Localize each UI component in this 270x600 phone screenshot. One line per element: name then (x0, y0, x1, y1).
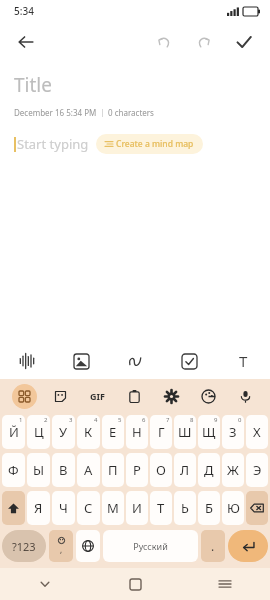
button[interactable]: Л (174, 453, 196, 487)
staticText: 0 characters (108, 107, 154, 118)
button[interactable]: . (201, 530, 225, 562)
staticText: Б (205, 499, 213, 517)
staticText: Э (253, 461, 262, 479)
button[interactable]: Г (150, 415, 172, 449)
staticText: 0 (238, 416, 242, 424)
button[interactable]: Shift (2, 491, 25, 525)
staticText: Ш (178, 423, 192, 441)
button[interactable]: Back (0, 568, 90, 600)
button[interactable]: Change language (76, 530, 100, 562)
staticText: Н (132, 423, 142, 441)
staticText: Я (34, 499, 43, 517)
button[interactable]: Русский (103, 530, 198, 562)
button[interactable]: Settings (153, 379, 190, 413)
staticText: Ы (33, 461, 45, 479)
staticText: О (156, 461, 166, 479)
button[interactable]: З (222, 415, 244, 449)
button[interactable]: Back (8, 24, 44, 60)
button[interactable]: Checklist (162, 343, 216, 379)
button[interactable]: Themes (190, 379, 227, 413)
button[interactable]: Ч (52, 491, 75, 525)
staticText: Д (204, 461, 214, 479)
staticText: 3 (69, 416, 73, 424)
button[interactable]: Щ (198, 415, 220, 449)
staticText: Start typing (17, 135, 89, 153)
button[interactable]: Stickers (42, 379, 79, 413)
button[interactable]: Draw (108, 343, 162, 379)
staticText: С (84, 499, 93, 517)
button[interactable]: Ы (27, 453, 50, 487)
button[interactable]: В (52, 453, 75, 487)
staticText: , (60, 544, 63, 555)
staticText: Ф (8, 461, 19, 479)
staticText: 2 (44, 416, 48, 424)
button[interactable]: Clipboard (116, 379, 153, 413)
button[interactable]: Б (198, 491, 220, 525)
button[interactable]: Я (27, 491, 50, 525)
button[interactable]: Undo (148, 26, 180, 58)
staticText: И (132, 499, 142, 517)
button[interactable]: П (102, 453, 124, 487)
button[interactable]: Home (90, 568, 180, 600)
button[interactable]: Й (2, 415, 25, 449)
button[interactable]: Recents (180, 568, 270, 600)
button[interactable]: Э (246, 453, 268, 487)
button[interactable]: Р (126, 453, 148, 487)
button[interactable]: Audio (0, 343, 54, 379)
staticText: Русский (133, 540, 168, 552)
button[interactable]: Emoji and comma (49, 530, 73, 562)
button[interactable]: Enter (228, 530, 268, 562)
button[interactable]: GIF (79, 379, 116, 413)
staticText: Г (158, 423, 165, 441)
button[interactable]: Redo (188, 26, 220, 58)
staticText: 9 (214, 416, 218, 424)
button[interactable]: Е (102, 415, 124, 449)
staticText: 5 (118, 416, 122, 424)
button[interactable]: Ц (27, 415, 50, 449)
staticText: У (59, 423, 68, 441)
button[interactable]: Image (54, 343, 108, 379)
button[interactable]: Ш (174, 415, 196, 449)
button[interactable]: У (52, 415, 75, 449)
staticText: GIF (90, 390, 105, 402)
button[interactable]: Н (126, 415, 148, 449)
staticText: К (84, 423, 93, 441)
staticText: Т (157, 499, 165, 517)
staticText: П (108, 461, 118, 479)
staticText: 6 (142, 416, 146, 424)
staticText: Create a mind map (116, 138, 194, 150)
button[interactable]: Voice input (227, 379, 264, 413)
button[interactable]: М (102, 491, 124, 525)
button[interactable]: И (126, 491, 148, 525)
button[interactable]: Create a mind map (96, 134, 203, 154)
staticText: T (239, 351, 248, 371)
staticText: Ж (227, 461, 239, 479)
button[interactable]: Apps (6, 379, 42, 413)
staticText: З (229, 423, 237, 441)
staticText: 1 (19, 416, 23, 424)
staticText: Ю (227, 499, 240, 517)
button[interactable]: Ь (174, 491, 196, 525)
button[interactable]: Ф (2, 453, 25, 487)
staticText: В (59, 461, 68, 479)
staticText: December 16 5:34 PM (14, 107, 97, 118)
staticText: Ь (181, 499, 189, 517)
button[interactable]: Т (150, 491, 172, 525)
staticText: Л (180, 461, 190, 479)
button[interactable]: А (77, 453, 100, 487)
button[interactable]: О (150, 453, 172, 487)
staticText: 5:34 (14, 4, 34, 18)
button[interactable]: Д (198, 453, 220, 487)
staticText: ?123 (12, 539, 36, 554)
staticText: . (211, 538, 215, 554)
button[interactable]: Text format (216, 343, 270, 379)
button[interactable]: ?123 (2, 530, 46, 562)
button[interactable]: Backspace (246, 491, 268, 525)
button[interactable]: Ю (222, 491, 244, 525)
button[interactable]: К (77, 415, 100, 449)
staticText: 8 (190, 416, 194, 424)
button[interactable]: Ж (222, 453, 244, 487)
button[interactable]: Done (228, 26, 260, 58)
button[interactable]: С (77, 491, 100, 525)
button[interactable]: Х (246, 415, 268, 449)
